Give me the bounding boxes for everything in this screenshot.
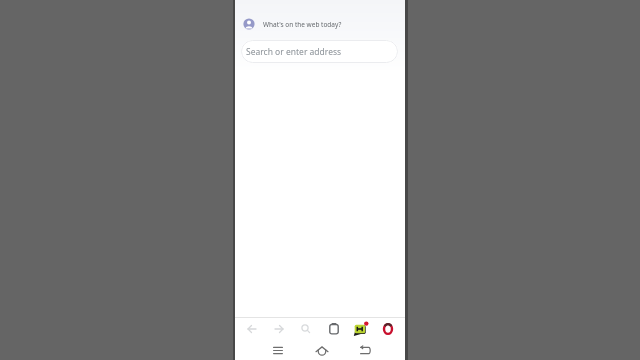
button[interactable] — [378, 319, 398, 339]
button[interactable] — [242, 319, 262, 339]
staticText: Search or enter address — [246, 46, 342, 58]
button[interactable] — [269, 319, 289, 339]
button[interactable] — [354, 340, 378, 360]
button[interactable] — [351, 319, 371, 339]
button[interactable] — [324, 319, 344, 339]
button[interactable] — [310, 340, 334, 360]
button[interactable] — [266, 340, 290, 360]
staticText: What's on the web today? — [263, 20, 342, 29]
button[interactable]: Search or enter address — [241, 40, 398, 63]
button[interactable]: What's on the web today? — [243, 16, 405, 32]
button[interactable] — [296, 319, 316, 339]
